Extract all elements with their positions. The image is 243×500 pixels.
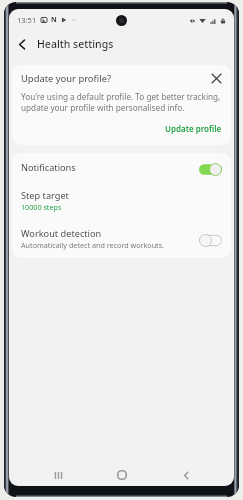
staticText: 10000 steps	[21, 202, 62, 212]
button[interactable]: Workout detection	[12, 219, 231, 258]
button[interactable]: Update profile	[164, 122, 223, 135]
staticText: N	[51, 15, 57, 25]
staticText: Automatically detect and record workouts…	[21, 240, 165, 250]
staticText: Health settings	[37, 37, 114, 51]
button[interactable]: On	[199, 163, 222, 176]
staticText: Notifications	[21, 161, 76, 174]
staticText: You're using a default profile. To get b…	[21, 91, 223, 113]
staticText: Update your profile?	[21, 72, 111, 85]
button[interactable]: Dismiss	[206, 68, 227, 89]
button[interactable]: Off	[199, 234, 222, 247]
button[interactable]: Step target	[12, 182, 231, 219]
button[interactable]: Home	[109, 462, 135, 486]
button[interactable]: Notifications	[12, 153, 231, 182]
button[interactable]: Recent apps	[45, 462, 71, 486]
staticText: 13:51	[17, 15, 37, 25]
staticText: Update profile	[165, 123, 222, 134]
staticText: Step target	[21, 189, 69, 202]
button[interactable]: Back	[173, 462, 199, 486]
staticText: Workout detection	[21, 227, 102, 240]
button[interactable]: Navigate up	[9, 27, 35, 61]
